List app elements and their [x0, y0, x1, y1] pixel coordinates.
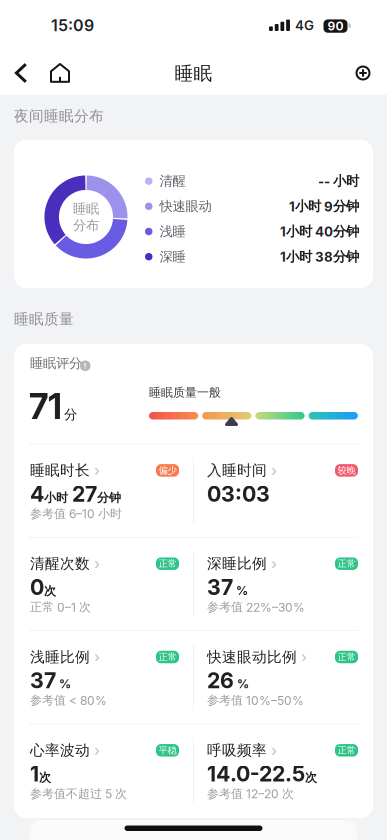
staticText: 1小时 40分钟	[280, 223, 359, 240]
staticText: 03:03	[207, 481, 270, 506]
staticText: 快速眼动比例	[207, 648, 297, 666]
staticText: 心率波动	[30, 741, 90, 759]
staticText: 较晚	[337, 465, 355, 476]
staticText: 浅睡	[159, 223, 185, 240]
staticText: !	[84, 361, 87, 370]
staticText: 浅睡比例	[30, 648, 90, 666]
staticText: 正常	[337, 651, 355, 663]
staticText: 清醒次数	[30, 555, 90, 573]
staticText: 清醒	[159, 173, 185, 189]
staticText: 4	[30, 481, 44, 506]
staticText: 分布	[73, 217, 99, 233]
button[interactable]: Add	[0, 44, 378, 88]
staticText: 深睡比例	[207, 555, 267, 573]
staticText: ›	[271, 742, 277, 759]
staticText: 1	[30, 761, 39, 786]
staticText: %	[56, 677, 71, 691]
staticText: 次	[305, 770, 317, 785]
staticText: 睡眠质量	[14, 310, 74, 328]
button[interactable]: 浅睡比例	[30, 631, 179, 723]
button[interactable]: 快速眼动比例	[207, 631, 358, 723]
staticText: 正常 0–1 次	[30, 600, 91, 614]
staticText: 睡眠质量一般	[149, 385, 221, 400]
button[interactable]: Home	[0, 44, 78, 93]
staticText: 4G	[295, 17, 314, 33]
staticText: 睡眠时长	[30, 461, 90, 479]
staticText: 平稳	[158, 745, 176, 756]
staticText: 正常	[337, 558, 355, 569]
staticText: -- 小时	[318, 173, 359, 189]
staticText: 参考值 12–20 次	[207, 786, 294, 801]
staticText: 偏少	[158, 465, 176, 476]
button[interactable]: 呼吸频率	[207, 724, 358, 816]
staticText: 快速眼动	[159, 198, 211, 214]
staticText: 27	[72, 481, 97, 506]
staticText: 小时	[44, 490, 72, 505]
staticText: 次	[44, 584, 56, 598]
staticText: 呼吸频率	[207, 741, 267, 759]
staticText: 睡眠	[73, 201, 99, 217]
staticText: 26	[207, 668, 234, 693]
staticText: ›	[301, 648, 307, 666]
staticText: 正常	[158, 651, 176, 663]
staticText: 15:09	[51, 16, 94, 35]
staticText: 1小时 9分钟	[289, 198, 359, 214]
staticText: 37	[30, 668, 56, 693]
staticText: 参考值 10%–50%	[207, 693, 304, 708]
staticText: 0	[30, 575, 44, 600]
button[interactable]: Back	[0, 44, 35, 93]
staticText: ›	[271, 555, 277, 572]
staticText: 参考值不超过 5 次	[30, 786, 127, 801]
staticText: 次	[39, 770, 51, 785]
button[interactable]: Info	[14, 344, 90, 371]
staticText: %	[234, 677, 249, 691]
staticText: 14.0-22.5	[207, 761, 305, 786]
button[interactable]: 清醒次数	[30, 538, 179, 630]
button[interactable]: 入睡时间	[207, 444, 358, 537]
staticText: ›	[94, 462, 100, 479]
button[interactable]: 心率波动	[30, 724, 179, 816]
staticText: 分钟	[97, 490, 121, 505]
staticText: 参考值 < 80%	[30, 693, 107, 708]
staticText: %	[233, 583, 248, 598]
staticText: 深睡	[159, 248, 185, 265]
staticText: 睡眠	[174, 62, 212, 85]
staticText: 夜间睡眠分布	[14, 107, 104, 125]
staticText: ›	[94, 555, 100, 572]
staticText: 90	[327, 19, 343, 33]
button[interactable]: 深睡比例	[207, 538, 358, 630]
staticText: ›	[94, 742, 100, 759]
staticText: 正常	[158, 558, 176, 569]
staticText: 37	[207, 575, 233, 600]
staticText: 正常	[337, 745, 355, 756]
staticText: 入睡时间	[207, 461, 267, 479]
staticText: 1小时 38分钟	[280, 248, 359, 265]
staticText: 睡眠评分	[30, 355, 82, 371]
staticText: ›	[271, 462, 277, 479]
staticText: 71	[29, 386, 62, 427]
staticText: 分	[64, 406, 77, 423]
staticText: ›	[94, 648, 100, 666]
staticText: 参考值 6–10 小时	[30, 506, 122, 521]
staticText: 参考值 22%–30%	[207, 600, 305, 614]
button[interactable]: 睡眠时长	[30, 444, 179, 537]
